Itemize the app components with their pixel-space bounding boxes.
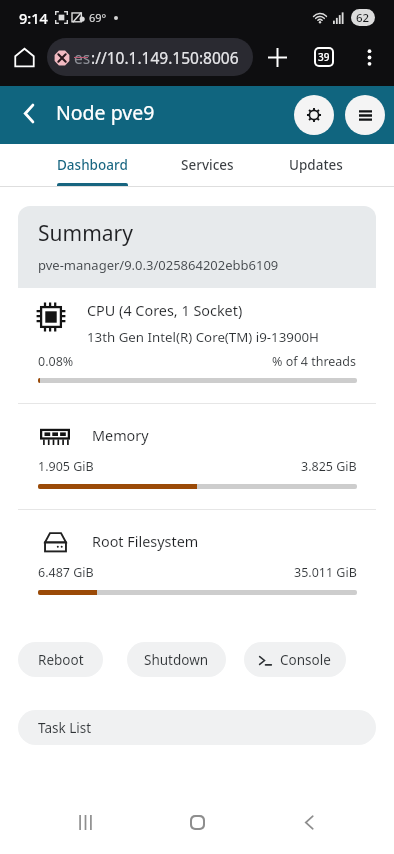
button[interactable]: Menu bbox=[345, 95, 385, 135]
staticText: Node pve9 bbox=[56, 99, 155, 126]
button[interactable]: Services bbox=[181, 144, 234, 187]
button[interactable]: New tab bbox=[259, 39, 295, 75]
staticText: pve-manager/9.0.3/025864202ebb6109 bbox=[38, 256, 279, 274]
staticText: Reboot bbox=[38, 651, 84, 669]
staticText: 35.011 GiB bbox=[294, 564, 357, 581]
staticText: Summary bbox=[38, 219, 133, 248]
staticText: 0.08% bbox=[38, 353, 74, 370]
button[interactable]: Console bbox=[244, 642, 346, 677]
staticText: % of 4 threads bbox=[272, 353, 357, 370]
staticText: Task List bbox=[38, 719, 92, 737]
button[interactable]: Tabs bbox=[306, 39, 342, 75]
button[interactable]: More options bbox=[352, 40, 386, 74]
staticText: Dashboard bbox=[57, 156, 128, 174]
button[interactable]: Dashboard bbox=[57, 144, 128, 187]
staticText: CPU (4 Cores, 1 Socket) bbox=[87, 301, 243, 321]
button[interactable]: Reboot bbox=[18, 642, 103, 677]
button[interactable]: Home bbox=[175, 800, 219, 844]
staticText: es bbox=[74, 47, 91, 68]
button[interactable]: Recent apps bbox=[63, 800, 107, 844]
staticText: 62 bbox=[356, 10, 370, 26]
staticText: Console bbox=[280, 651, 331, 669]
staticText: Shutdown bbox=[144, 651, 209, 669]
staticText: 13th Gen Intel(R) Core(TM) i9-13900H bbox=[87, 328, 319, 346]
staticText: 39 bbox=[318, 50, 330, 64]
button[interactable]: Back bbox=[287, 800, 331, 844]
staticText: 3.825 GiB bbox=[301, 458, 357, 475]
staticText: Services bbox=[181, 156, 234, 174]
staticText: Updates bbox=[289, 156, 343, 174]
staticText: Memory bbox=[92, 426, 149, 446]
staticText: Root Filesystem bbox=[92, 532, 199, 552]
staticText: 1.905 GiB bbox=[38, 458, 94, 475]
button[interactable]: Theme bbox=[294, 95, 334, 135]
button[interactable]: Home bbox=[7, 40, 41, 74]
staticText: 9:14 bbox=[19, 8, 48, 28]
button[interactable]: Updates bbox=[289, 144, 343, 187]
button[interactable]: es bbox=[47, 38, 253, 76]
button[interactable]: Task List bbox=[18, 710, 376, 745]
button[interactable]: Shutdown bbox=[127, 642, 226, 677]
staticText: 6.487 GiB bbox=[38, 564, 94, 581]
staticText: ://10.1.149.150:8006 bbox=[91, 47, 239, 68]
staticText: 69° bbox=[89, 10, 107, 25]
button[interactable]: Back bbox=[8, 92, 50, 134]
